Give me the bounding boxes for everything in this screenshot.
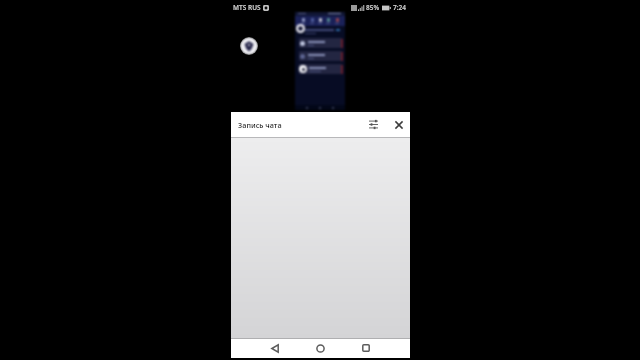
button[interactable]: Back bbox=[267, 340, 283, 356]
staticText: MTS RUS bbox=[233, 3, 261, 12]
staticText: 85% bbox=[366, 3, 380, 12]
button[interactable]: Profile bbox=[240, 37, 258, 55]
button[interactable]: Recent apps bbox=[358, 340, 374, 356]
staticText: 7:24 bbox=[393, 3, 406, 12]
button[interactable]: Home bbox=[312, 340, 328, 356]
staticText: Запись чата bbox=[238, 120, 282, 130]
button[interactable]: Filter settings bbox=[365, 116, 382, 133]
button[interactable]: Close bbox=[390, 116, 407, 133]
